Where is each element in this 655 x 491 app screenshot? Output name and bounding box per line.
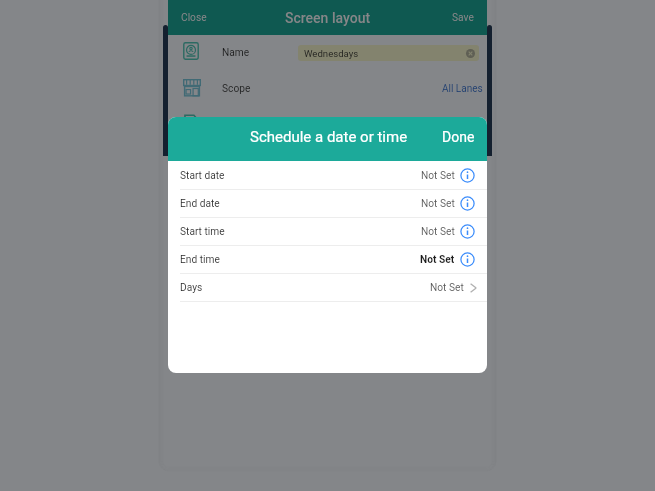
staticText: Days (180, 282, 203, 294)
button[interactable]: Wednesdays (298, 45, 479, 61)
button[interactable]: End time (168, 246, 487, 274)
other: Clear text (466, 49, 475, 58)
staticText: Close (181, 12, 207, 24)
staticText: End time (180, 254, 220, 266)
staticText: Done (442, 129, 475, 145)
staticText: Start time (180, 226, 225, 238)
staticText: Start date (180, 170, 225, 182)
button[interactable]: All Lanes (436, 75, 487, 103)
staticText: All Lanes (442, 83, 483, 95)
staticText: End date (180, 198, 220, 210)
staticText: Screen layout (285, 10, 371, 26)
staticText: Not Set (421, 226, 455, 238)
other: Info (460, 252, 475, 267)
button[interactable]: Scope (168, 71, 487, 107)
staticText: Scope (222, 83, 251, 95)
other: Info (460, 224, 475, 239)
staticText: Name (222, 47, 250, 59)
staticText: Not Set (421, 170, 455, 182)
other: Info (460, 168, 475, 183)
other: Info (460, 196, 475, 211)
staticText: Not Set (420, 254, 455, 266)
staticText: Not Set (421, 198, 455, 210)
button[interactable]: Start date (168, 162, 487, 190)
button[interactable]: Name (168, 35, 487, 71)
staticText: Wednesdays (304, 48, 359, 59)
button[interactable]: Start time (168, 218, 487, 246)
staticText: Not Set (430, 282, 464, 294)
button[interactable]: Days (168, 274, 487, 302)
staticText: Save (452, 12, 474, 24)
other: Open (470, 283, 477, 293)
button[interactable]: Save (439, 3, 487, 33)
staticText: Schedule a date or time (250, 128, 408, 146)
button[interactable]: Done (429, 119, 487, 159)
button[interactable]: End date (168, 190, 487, 218)
button[interactable]: Close (168, 3, 220, 33)
